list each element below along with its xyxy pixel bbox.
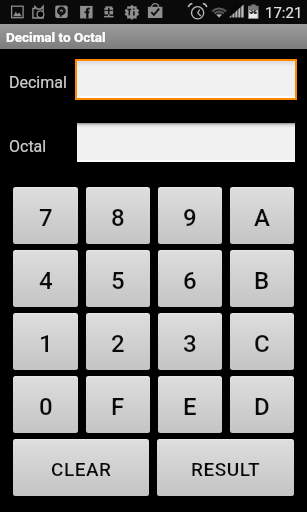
button[interactable]: 2 [86,313,150,370]
button[interactable]: Octal result [75,123,297,163]
button[interactable]: 0 [13,376,78,433]
staticText: 9 [183,204,197,232]
staticText: Decimal to Octal [6,29,106,45]
staticText: CLEAR [51,458,112,480]
button[interactable]: 6 [158,250,222,307]
staticText: A [254,204,270,232]
staticText: 6 [183,267,197,295]
staticText: B [254,267,270,295]
button[interactable]: D [230,376,294,433]
staticText: E [183,393,197,421]
staticText: Octal [9,137,47,156]
staticText: 0 [39,393,53,421]
button[interactable]: F [86,376,150,433]
button[interactable]: 8 [86,187,150,244]
button[interactable]: Decimal input [75,59,297,100]
staticText: 17:21 [265,4,303,22]
button[interactable]: 3 [158,313,222,370]
staticText: D [254,393,270,421]
button[interactable]: 1 [13,313,78,370]
staticText: F [111,393,125,421]
staticText: 5 [111,267,125,295]
button[interactable]: C [230,313,294,370]
staticText: 1 [39,330,53,358]
button[interactable]: 7 [13,187,78,244]
button[interactable]: 4 [13,250,78,307]
staticText: Decimal [9,73,67,92]
staticText: 2 [111,330,125,358]
button[interactable]: E [158,376,222,433]
button[interactable]: B [230,250,294,307]
button[interactable]: CLEAR [13,439,149,496]
staticText: 4 [39,267,53,295]
button[interactable]: A [230,187,294,244]
staticText: RESULT [191,458,261,480]
staticText: 3 [183,330,197,358]
button[interactable]: RESULT [157,439,294,496]
staticText: C [254,330,270,358]
staticText: 7 [39,204,53,232]
button[interactable]: 9 [158,187,222,244]
staticText: 8 [111,204,125,232]
button[interactable]: 5 [86,250,150,307]
